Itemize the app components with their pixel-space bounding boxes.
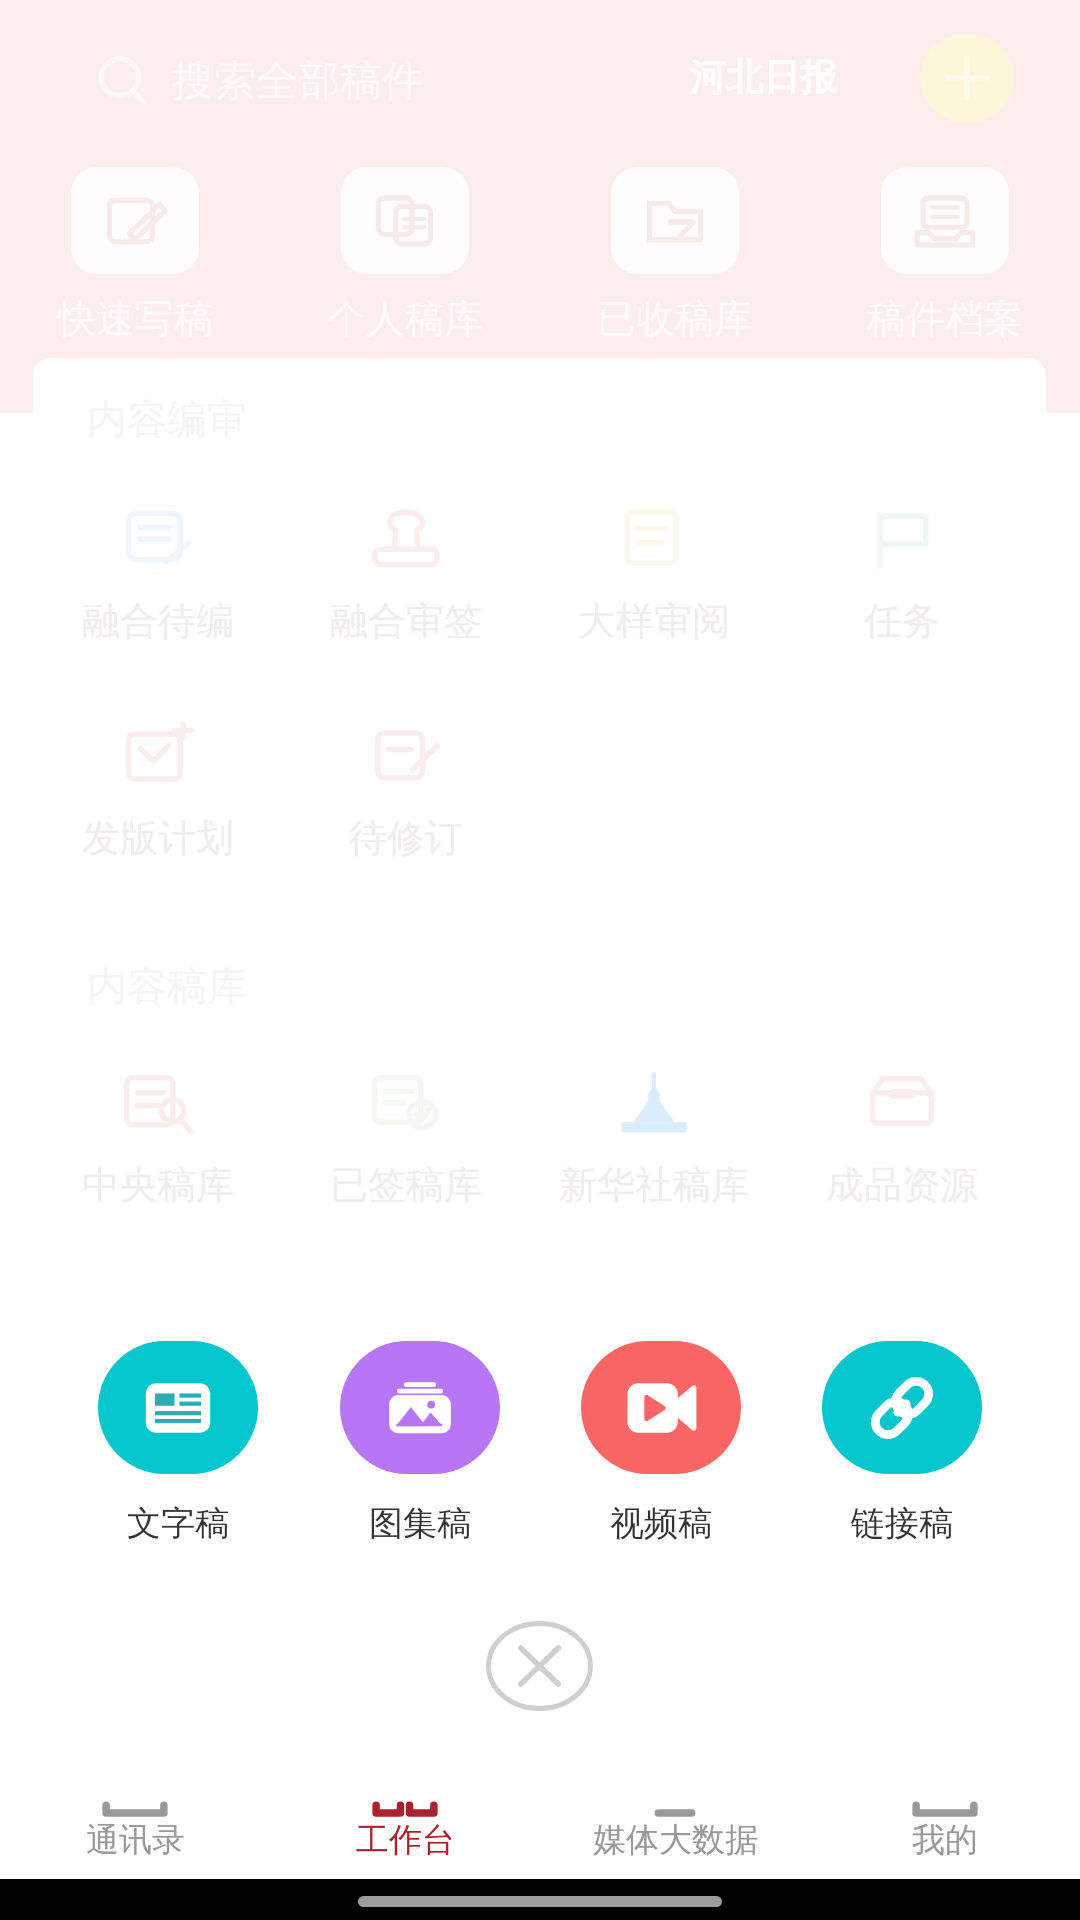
button[interactable]: 融合待编 <box>34 507 282 645</box>
staticText: 内容编审 <box>87 394 247 444</box>
staticText: 媒体大数据 <box>593 1819 758 1861</box>
staticText: 个人稿库 <box>327 294 483 343</box>
button[interactable]: Search <box>92 48 424 114</box>
button[interactable]: 媒体大数据 <box>540 1787 810 1879</box>
button[interactable]: 视频稿 <box>581 1341 741 1545</box>
staticText: 已签稿库 <box>330 1161 482 1209</box>
staticText: 链接稿 <box>851 1502 953 1545</box>
button[interactable]: 我的 <box>810 1787 1080 1879</box>
button[interactable]: 稿件档案 <box>810 167 1080 343</box>
staticText: 快速写稿 <box>57 294 213 343</box>
staticText: 大样审阅 <box>578 597 730 645</box>
button[interactable]: 文字稿 <box>98 1341 258 1545</box>
button[interactable]: 通讯录 <box>0 1787 270 1879</box>
button[interactable]: 任务 <box>778 507 1026 645</box>
button[interactable]: 新华社稿库 <box>530 1071 778 1209</box>
button[interactable]: 已签稿库 <box>282 1071 530 1209</box>
button[interactable]: 中央稿库 <box>34 1071 282 1209</box>
button[interactable]: 成品资源 <box>778 1071 1026 1209</box>
staticText: 融合审签 <box>330 597 482 645</box>
staticText: 通讯录 <box>86 1819 185 1861</box>
button[interactable]: 已收稿库 <box>540 167 810 343</box>
button[interactable]: 大样审阅 <box>530 507 778 645</box>
staticText: 图集稿 <box>369 1502 471 1545</box>
staticText: 我的 <box>912 1819 978 1861</box>
staticText: 内容稿库 <box>87 961 247 1011</box>
staticText: 融合待编 <box>82 597 234 645</box>
button[interactable]: 待修订 <box>282 724 530 862</box>
staticText: 任务 <box>864 597 940 645</box>
staticText: 稿件档案 <box>867 294 1023 343</box>
button[interactable]: 发版计划 <box>34 724 282 862</box>
button[interactable]: Add <box>920 34 1014 122</box>
button[interactable]: 个人稿库 <box>270 167 540 343</box>
staticText: 已收稿库 <box>597 294 753 343</box>
staticText: 中央稿库 <box>82 1161 234 1209</box>
staticText: 新华社稿库 <box>559 1161 749 1209</box>
staticText: 搜索全部稿件 <box>172 55 424 108</box>
staticText: 待修订 <box>349 814 463 862</box>
button[interactable]: 链接稿 <box>822 1341 982 1545</box>
staticText: 视频稿 <box>610 1502 712 1545</box>
staticText: 发版计划 <box>82 814 234 862</box>
button[interactable]: 融合审签 <box>282 507 530 645</box>
button[interactable]: 快速写稿 <box>0 167 270 343</box>
button[interactable]: Close <box>486 1621 593 1711</box>
staticText: 成品资源 <box>826 1161 978 1209</box>
button[interactable]: 图集稿 <box>340 1341 500 1545</box>
staticText: 文字稿 <box>127 1502 229 1545</box>
staticText: 工作台 <box>356 1819 455 1861</box>
button[interactable]: 工作台 <box>270 1787 540 1879</box>
staticText: 河北日报 <box>689 54 837 101</box>
